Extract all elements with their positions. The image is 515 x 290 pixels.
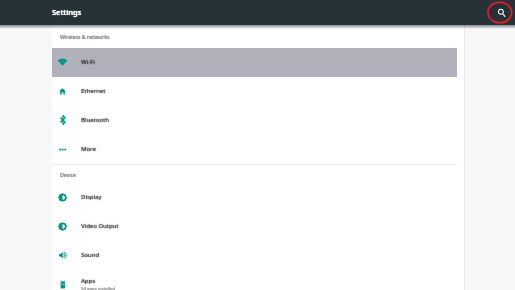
button[interactable]: Video Output (52, 212, 464, 241)
staticText: Wireless & networks (60, 33, 110, 40)
button[interactable]: More (52, 135, 464, 164)
staticText: Apps (81, 277, 96, 285)
staticText: Wi-Fi (81, 58, 95, 66)
button[interactable]: Sound (52, 241, 464, 270)
staticText: More (81, 145, 96, 153)
button[interactable]: Bluetooth (52, 106, 464, 135)
staticText: Video Output (81, 222, 119, 230)
button[interactable]: Search (491, 2, 511, 22)
staticText: Display (81, 193, 102, 201)
staticText: Sound (81, 251, 100, 259)
button[interactable]: Apps (52, 270, 464, 290)
staticText: Settings (52, 7, 82, 17)
button[interactable]: Ethernet (52, 77, 464, 106)
button[interactable]: Wi-Fi (52, 48, 464, 77)
staticText: Device (60, 171, 76, 178)
staticText: Ethernet (81, 87, 106, 95)
staticText: Bluetooth (81, 116, 109, 124)
staticText: 54 apps installed (81, 285, 115, 290)
button[interactable]: Display (52, 183, 464, 212)
